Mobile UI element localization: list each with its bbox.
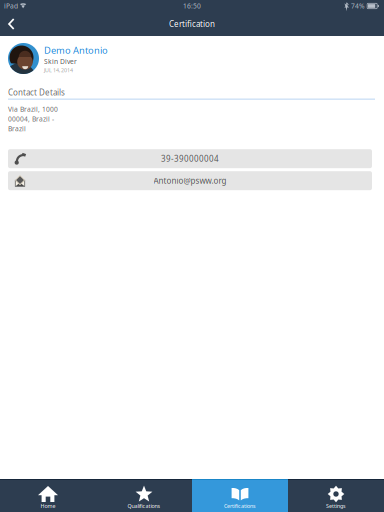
staticText: 39-390000004 — [161, 153, 219, 164]
staticText: Antonio@psww.org — [153, 175, 226, 186]
button[interactable]: Settings — [288, 479, 384, 512]
staticText: Certifications — [224, 502, 256, 510]
button[interactable]: Back — [0, 12, 25, 36]
staticText: Contact Details — [8, 87, 65, 98]
staticText: Demo Antonio — [44, 44, 108, 56]
button[interactable]: 39-390000004 — [8, 149, 372, 168]
staticText: iPad — [4, 2, 18, 10]
button[interactable]: Qualifications — [96, 479, 192, 512]
staticText: Qualifications — [127, 502, 160, 510]
button[interactable]: Home — [0, 479, 96, 512]
staticText: Home — [40, 502, 55, 510]
staticText: 16:50 — [183, 2, 201, 10]
staticText: Settings — [326, 502, 346, 510]
staticText: 00004, Brazil - — [8, 114, 54, 123]
staticText: JUL 14, 2014 — [44, 67, 73, 74]
staticText: Via Brazil, 1000 — [8, 105, 58, 113]
button[interactable]: Antonio@psww.org — [8, 171, 372, 190]
staticText: Brazil — [8, 124, 26, 133]
staticText: 74% — [351, 2, 365, 10]
staticText: Skin Diver — [44, 57, 77, 66]
button[interactable]: Certifications — [192, 479, 288, 512]
staticText: Certification — [169, 19, 215, 29]
